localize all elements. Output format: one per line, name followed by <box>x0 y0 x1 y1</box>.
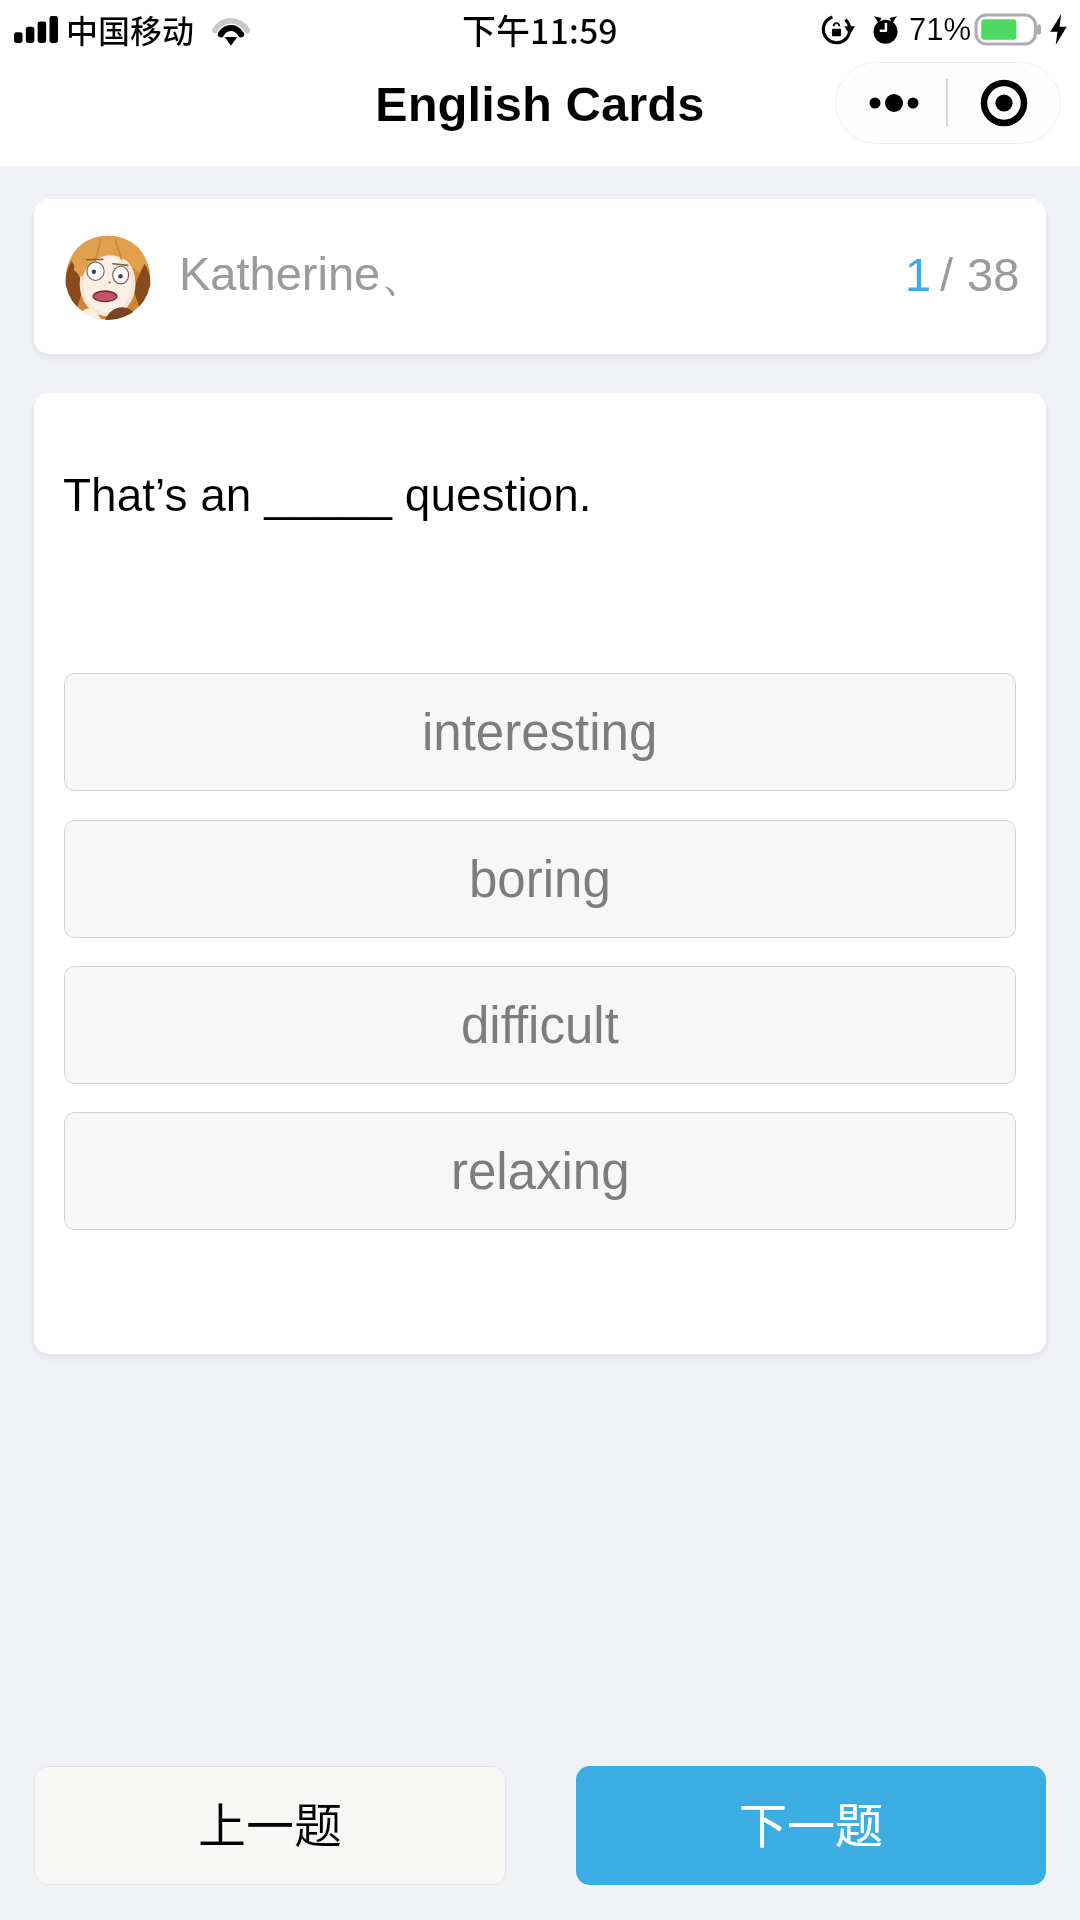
staticText: Katherine、 <box>179 245 428 304</box>
staticText: difficult <box>461 997 619 1054</box>
staticText: That’s an _____ question. <box>63 469 592 520</box>
button[interactable]: More options <box>835 62 947 144</box>
staticText: / <box>940 248 954 301</box>
staticText: 中国移动 <box>66 6 195 52</box>
staticText: 38 <box>967 248 1020 301</box>
staticText: boring <box>469 851 611 908</box>
button[interactable]: 下一题 <box>576 1766 1046 1885</box>
staticText: interesting <box>422 704 658 761</box>
staticText: 1 <box>905 248 932 301</box>
button[interactable]: 上一题 <box>34 1766 506 1885</box>
staticText: 下一题 <box>739 1787 884 1857</box>
staticText: 71% <box>909 12 972 47</box>
staticText: English Cards <box>375 77 705 132</box>
staticText: relaxing <box>451 1143 630 1200</box>
button[interactable]: interesting <box>64 673 1016 791</box>
staticText: 上一题 <box>198 1787 343 1857</box>
button[interactable]: difficult <box>64 966 1016 1084</box>
button[interactable]: Katherine、 <box>34 199 1046 354</box>
button[interactable]: boring <box>64 820 1016 938</box>
button[interactable]: relaxing <box>64 1112 1016 1230</box>
staticText: 下午11:59 <box>462 5 618 54</box>
button[interactable]: Close mini program <box>947 62 1061 144</box>
